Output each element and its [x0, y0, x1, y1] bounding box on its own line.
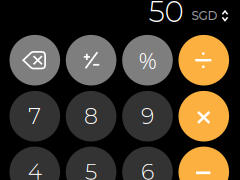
- button[interactable]: 7: [9, 91, 60, 141]
- button[interactable]: 8: [66, 91, 116, 141]
- button[interactable]: Subtract: [178, 147, 229, 180]
- staticText: 4: [28, 158, 42, 180]
- staticText: 7: [28, 103, 41, 130]
- button[interactable]: 6: [122, 147, 173, 180]
- staticText: 9: [141, 103, 154, 130]
- button[interactable]: 9: [122, 91, 173, 141]
- button[interactable]: Multiply: [178, 91, 229, 141]
- staticText: %: [138, 45, 156, 75]
- button[interactable]: Divide: [178, 35, 229, 85]
- staticText: 5: [85, 158, 97, 180]
- staticText: 50: [148, 0, 183, 29]
- button[interactable]: Plus minus: [66, 35, 116, 85]
- button[interactable]: %: [122, 35, 173, 85]
- button[interactable]: Currency SGD: [186, 6, 228, 25]
- staticText: SGD: [192, 8, 218, 23]
- button[interactable]: Delete: [9, 35, 60, 85]
- staticText: 6: [141, 158, 154, 180]
- button[interactable]: 4: [9, 147, 60, 180]
- staticText: 8: [84, 103, 98, 130]
- button[interactable]: 5: [66, 147, 116, 180]
